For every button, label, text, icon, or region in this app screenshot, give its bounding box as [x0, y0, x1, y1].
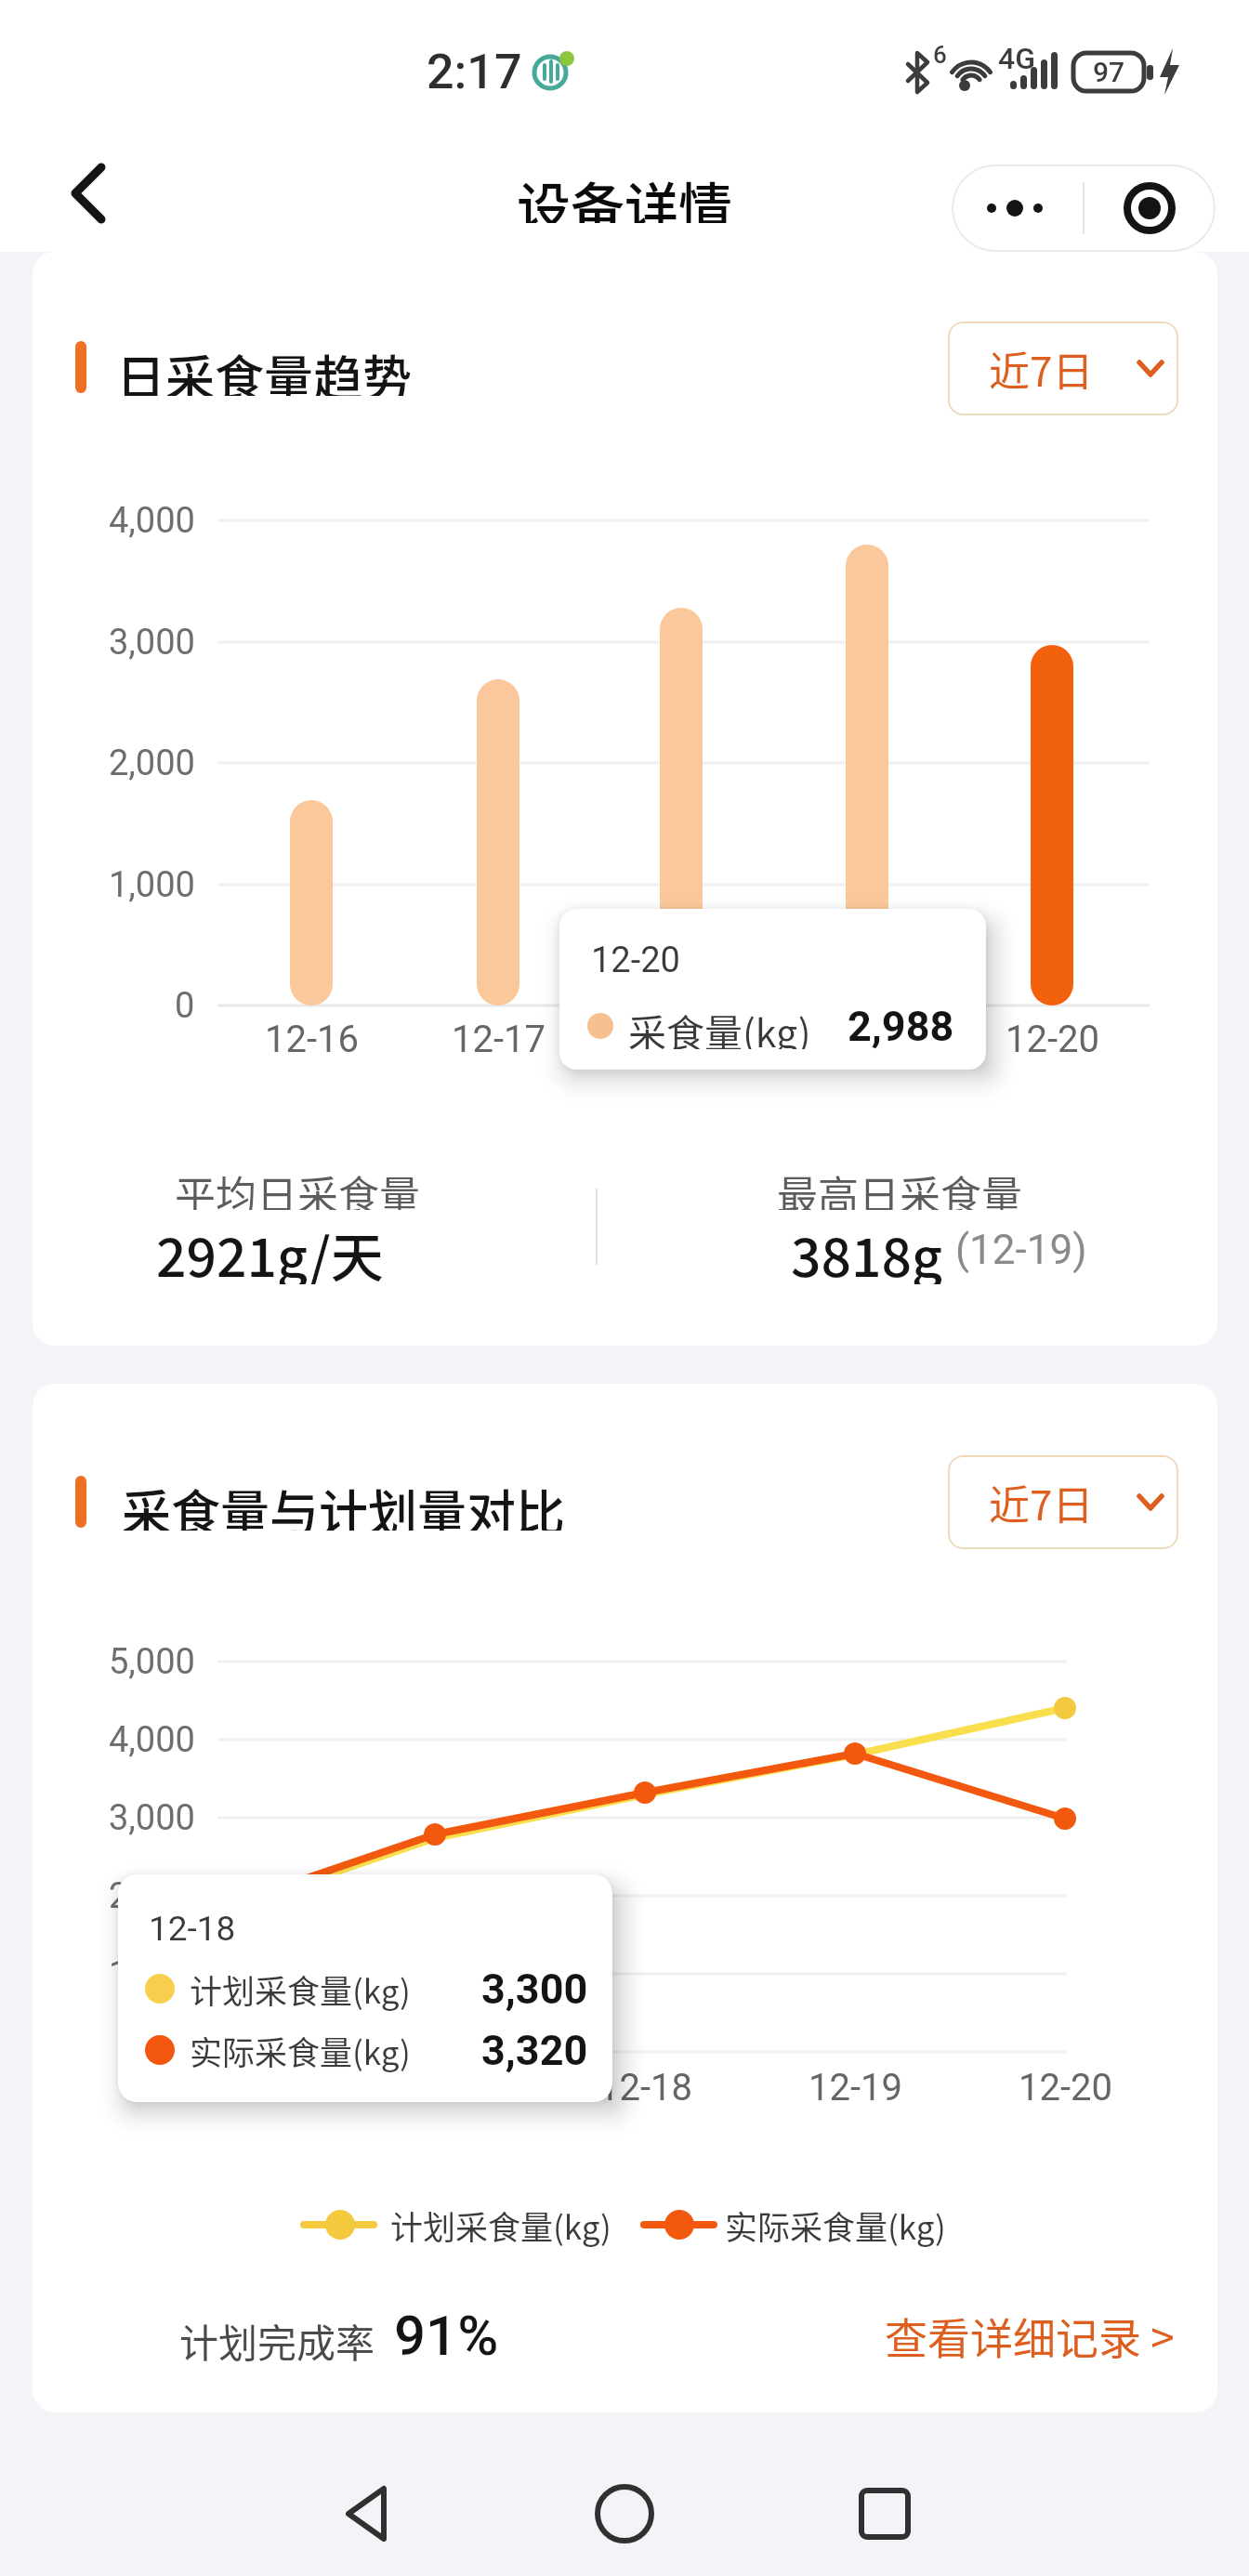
staticText: 6 [933, 41, 947, 69]
button[interactable]: 近7日 [948, 322, 1178, 415]
staticText: 1,000 [109, 864, 195, 906]
staticText: 计划采食量(kg) [390, 2201, 611, 2249]
staticText: 12-16 [265, 1018, 359, 1061]
staticText: 3,300 [481, 1965, 588, 2014]
staticText: 2,000 [109, 1875, 195, 1917]
staticText: 1,000 [109, 1953, 195, 1995]
staticText: 12-20 [1019, 2066, 1112, 2109]
staticText: 近7日 [989, 339, 1094, 399]
button[interactable] [307, 2463, 427, 2565]
button[interactable] [1084, 164, 1216, 252]
staticText: 2921g/天 [156, 1216, 384, 1284]
button[interactable] [564, 2463, 685, 2565]
staticText: 2,988 [848, 1002, 954, 1051]
staticText: 0 [175, 985, 195, 1027]
staticText: 计划采食量(kg) [190, 1965, 411, 2012]
staticText: 12-18 [598, 2066, 692, 2109]
staticText: 4G [998, 41, 1035, 74]
staticText: 2,000 [109, 743, 195, 784]
staticText: 查看详细记录 > [885, 2305, 1175, 2367]
button[interactable]: 查看详细记录 > [877, 2303, 1175, 2368]
button[interactable] [824, 2463, 945, 2565]
staticText: 4,000 [109, 500, 195, 542]
staticText: 4,000 [109, 1719, 195, 1761]
staticText: 3,000 [109, 1797, 195, 1839]
staticText: 12-17 [452, 1018, 546, 1061]
staticText: 采食量(kg) [628, 1003, 811, 1049]
staticText: 实际采食量(kg) [190, 2027, 411, 2073]
button[interactable] [51, 149, 125, 237]
staticText: 平均日采食量 [175, 1163, 420, 1210]
staticText: 12-19 [821, 1018, 914, 1061]
staticText: 日采食量趋势 [116, 340, 412, 396]
button[interactable]: 近7日 [948, 1455, 1178, 1549]
staticText: 91% [394, 2303, 499, 2368]
staticText: 5,000 [109, 1641, 195, 1683]
button[interactable] [952, 164, 1084, 252]
staticText: 0 [175, 2031, 195, 2073]
staticText: 2:17 [427, 44, 522, 100]
staticText: 采食量与计划量对比 [122, 1475, 565, 1531]
staticText: 最高日采食量 [777, 1163, 1022, 1210]
staticText: 计划完成率 [179, 2312, 375, 2362]
staticText: 12-18 [635, 1018, 729, 1061]
staticText: 实际采食量(kg) [725, 2201, 946, 2249]
staticText: 12-17 [388, 2066, 482, 2109]
staticText: 3,320 [481, 2026, 588, 2075]
staticText: 12-19 [809, 2066, 902, 2109]
staticText: 12-16 [178, 2066, 272, 2109]
staticText: 97 [1093, 56, 1125, 88]
staticText: 3818g [791, 1216, 942, 1284]
staticText: 12-20 [1006, 1018, 1099, 1061]
staticText: 近7日 [989, 1473, 1094, 1532]
staticText: (12-19) [955, 1226, 1087, 1274]
staticText: 3,000 [109, 622, 195, 664]
staticText: 12-18 [149, 1909, 236, 1949]
staticText: 12-20 [591, 940, 680, 981]
staticText: 设备详情 [517, 165, 733, 223]
